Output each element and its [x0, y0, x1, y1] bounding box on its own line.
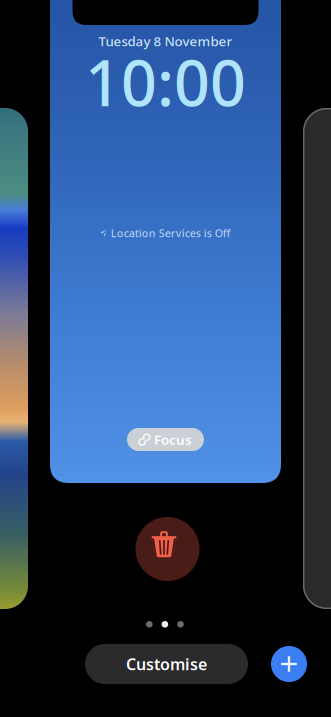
staticText: Customise	[126, 653, 207, 675]
button[interactable]: Add New Wallpaper	[271, 644, 307, 684]
staticText: Tuesday 8 November	[98, 32, 232, 50]
staticText: 10:00	[85, 40, 246, 124]
button[interactable]: Delete	[135, 517, 199, 581]
button[interactable]: Customise	[85, 644, 248, 684]
staticText: Location Services is Off	[111, 226, 231, 240]
staticText: Focus	[154, 431, 192, 448]
